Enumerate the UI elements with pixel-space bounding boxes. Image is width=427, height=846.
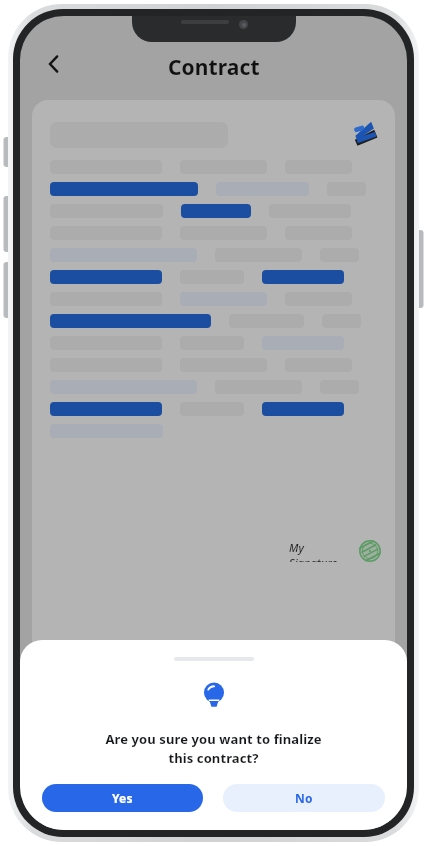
staticText: Contract [168, 53, 260, 82]
staticText: Are you sure you want to finalize this c… [105, 730, 322, 767]
button[interactable]: No [223, 784, 385, 812]
button[interactable]: Yes [42, 784, 203, 812]
staticText: My Signature [289, 540, 351, 562]
staticText: No [295, 790, 313, 806]
staticText: Yes [112, 790, 133, 806]
button[interactable]: Back [32, 42, 76, 86]
